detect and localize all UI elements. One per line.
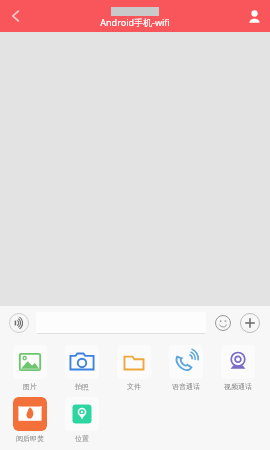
button[interactable]: 拍照	[56, 344, 108, 392]
button[interactable]: Back	[0, 0, 32, 32]
staticText: 图片	[23, 382, 37, 391]
button[interactable]: Contact info	[238, 0, 270, 32]
button[interactable]: 文件	[108, 344, 160, 392]
staticText: 拍照	[75, 382, 89, 391]
button[interactable]	[36, 312, 206, 334]
staticText: 位置	[75, 434, 89, 443]
staticText: Android手机-wifi	[100, 16, 170, 28]
button[interactable]: 位置	[56, 396, 108, 444]
staticText: 语音通话	[172, 382, 200, 391]
staticText: 阅后即焚	[16, 434, 44, 443]
staticText: 视频通话	[224, 382, 252, 391]
button[interactable]: Emoji	[210, 310, 236, 336]
button[interactable]: 阅后即焚	[4, 396, 56, 444]
staticText: 文件	[127, 382, 141, 391]
button[interactable]: 视频通话	[212, 344, 264, 392]
button[interactable]: More	[236, 309, 264, 337]
button[interactable]: 语音通话	[160, 344, 212, 392]
button[interactable]: 图片	[4, 344, 56, 392]
button[interactable]: Voice message	[6, 310, 32, 336]
